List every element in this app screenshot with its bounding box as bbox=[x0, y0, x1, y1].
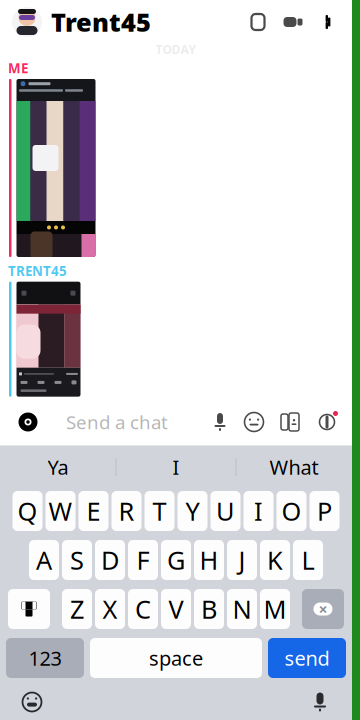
button[interactable]: Send a chat bbox=[48, 399, 204, 445]
button[interactable]: Camera bbox=[8, 399, 48, 445]
button[interactable]: Video call bbox=[274, 0, 312, 44]
button[interactable]: O bbox=[276, 491, 306, 531]
button[interactable]: What bbox=[236, 446, 351, 488]
button[interactable]: H bbox=[194, 540, 224, 580]
button[interactable]: C bbox=[128, 589, 158, 629]
button[interactable]: D bbox=[95, 540, 125, 580]
staticText: V bbox=[168, 592, 183, 626]
staticText: send bbox=[284, 645, 329, 671]
button[interactable]: W bbox=[45, 491, 75, 531]
staticText: 123 bbox=[28, 645, 61, 671]
staticText: L bbox=[301, 543, 314, 577]
button[interactable]: Cameos bbox=[272, 399, 308, 445]
button[interactable]: Shift bbox=[8, 589, 50, 629]
button[interactable]: Trent45 bbox=[42, 0, 157, 44]
staticText: A bbox=[36, 543, 52, 577]
staticText: Z bbox=[70, 592, 84, 626]
button[interactable]: Delete bbox=[302, 589, 344, 629]
button[interactable]: Y bbox=[177, 491, 207, 531]
button[interactable]: V bbox=[161, 589, 191, 629]
button[interactable]: Games bbox=[308, 399, 346, 445]
staticText: Ya bbox=[47, 454, 68, 480]
staticText: P bbox=[317, 494, 332, 528]
staticText: D bbox=[101, 543, 119, 577]
button[interactable]: Voice note bbox=[204, 399, 236, 445]
button[interactable]: send bbox=[268, 638, 346, 678]
button[interactable]: P bbox=[309, 491, 339, 531]
staticText: R bbox=[118, 494, 134, 528]
staticText: × bbox=[318, 598, 327, 620]
button[interactable]: Ya bbox=[0, 446, 115, 488]
staticText: I bbox=[172, 454, 179, 480]
button[interactable]: I bbox=[116, 446, 235, 488]
button[interactable]: G bbox=[161, 540, 191, 580]
button[interactable]: T bbox=[144, 491, 174, 531]
button[interactable]: R bbox=[111, 491, 141, 531]
button[interactable]: E bbox=[78, 491, 108, 531]
staticText: J bbox=[238, 543, 245, 577]
staticText: Send a chat bbox=[66, 410, 168, 434]
staticText: ME bbox=[8, 59, 28, 77]
staticText: U bbox=[216, 494, 235, 528]
staticText: Y bbox=[185, 494, 199, 528]
button[interactable]: Dictation bbox=[300, 686, 340, 718]
staticText: E bbox=[86, 494, 100, 528]
button[interactable]: N bbox=[227, 589, 257, 629]
button[interactable]: Profile bbox=[12, 7, 42, 37]
button[interactable]: L bbox=[293, 540, 323, 580]
staticText: C bbox=[135, 592, 151, 626]
staticText: F bbox=[136, 543, 149, 577]
button[interactable]: A bbox=[29, 540, 59, 580]
button[interactable]: More bbox=[312, 0, 344, 44]
button[interactable]: Z bbox=[62, 589, 92, 629]
staticText: I bbox=[254, 494, 263, 528]
staticText: Trent45 bbox=[51, 5, 151, 39]
staticText: T bbox=[152, 494, 166, 528]
staticText: Q bbox=[17, 494, 37, 528]
button[interactable]: space bbox=[90, 638, 262, 678]
button[interactable]: S bbox=[62, 540, 92, 580]
button[interactable]: F bbox=[128, 540, 158, 580]
staticText: M bbox=[263, 592, 286, 626]
button[interactable]: Audio call bbox=[242, 0, 274, 44]
button[interactable]: X bbox=[95, 589, 125, 629]
button[interactable]: M bbox=[260, 589, 290, 629]
staticText: O bbox=[281, 494, 301, 528]
button[interactable]: B bbox=[194, 589, 224, 629]
button[interactable]: Emoji keyboard bbox=[12, 686, 52, 718]
staticText: K bbox=[267, 543, 283, 577]
staticText: W bbox=[48, 494, 72, 528]
button[interactable]: Q bbox=[12, 491, 42, 531]
staticText: G bbox=[167, 543, 185, 577]
button[interactable]: 123 bbox=[6, 638, 84, 678]
button[interactable]: K bbox=[260, 540, 290, 580]
button[interactable]: Stickers bbox=[236, 399, 272, 445]
staticText: B bbox=[201, 592, 217, 626]
staticText: What bbox=[269, 454, 318, 480]
staticText: space bbox=[149, 645, 203, 671]
staticText: X bbox=[102, 592, 117, 626]
staticText: H bbox=[199, 543, 218, 577]
button[interactable]: I bbox=[243, 491, 273, 531]
staticText: S bbox=[70, 543, 84, 577]
button[interactable]: J bbox=[227, 540, 257, 580]
staticText: TODAY bbox=[155, 41, 196, 57]
button[interactable]: U bbox=[210, 491, 240, 531]
staticText: TRENT45 bbox=[8, 262, 67, 280]
staticText: N bbox=[232, 592, 251, 626]
